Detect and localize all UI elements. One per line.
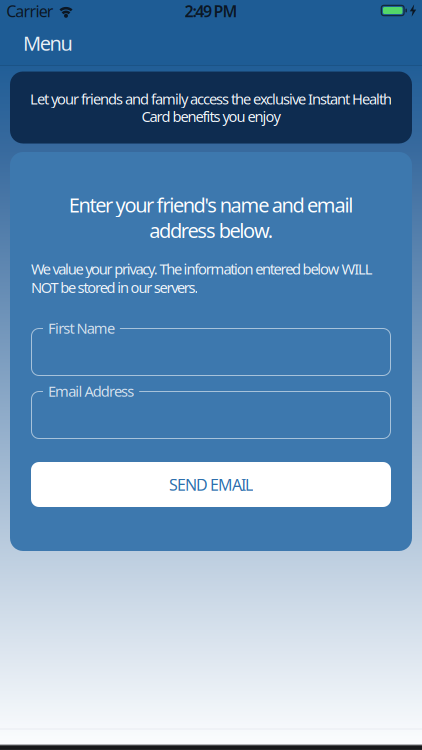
staticText: address below. bbox=[149, 217, 273, 244]
staticText: Let your friends and family access the e… bbox=[30, 89, 392, 108]
staticText: NOT be stored in our servers. bbox=[31, 277, 198, 297]
button[interactable]: Email Address bbox=[31, 391, 391, 439]
staticText: Card benefits you enjoy bbox=[141, 106, 280, 126]
button[interactable]: SEND EMAIL bbox=[31, 462, 391, 507]
staticText: Email Address bbox=[48, 381, 134, 401]
staticText: Carrier bbox=[6, 0, 54, 22]
button[interactable]: Menu bbox=[23, 30, 72, 56]
staticText: We value your privacy. The information e… bbox=[31, 259, 373, 278]
button[interactable]: First Name bbox=[31, 328, 391, 376]
staticText: First Name bbox=[48, 318, 115, 338]
staticText: Enter your friend's name and email bbox=[69, 191, 353, 218]
staticText: SEND EMAIL bbox=[169, 474, 253, 495]
staticText: 2:49 PM bbox=[185, 0, 237, 22]
staticText: Menu bbox=[23, 30, 72, 56]
